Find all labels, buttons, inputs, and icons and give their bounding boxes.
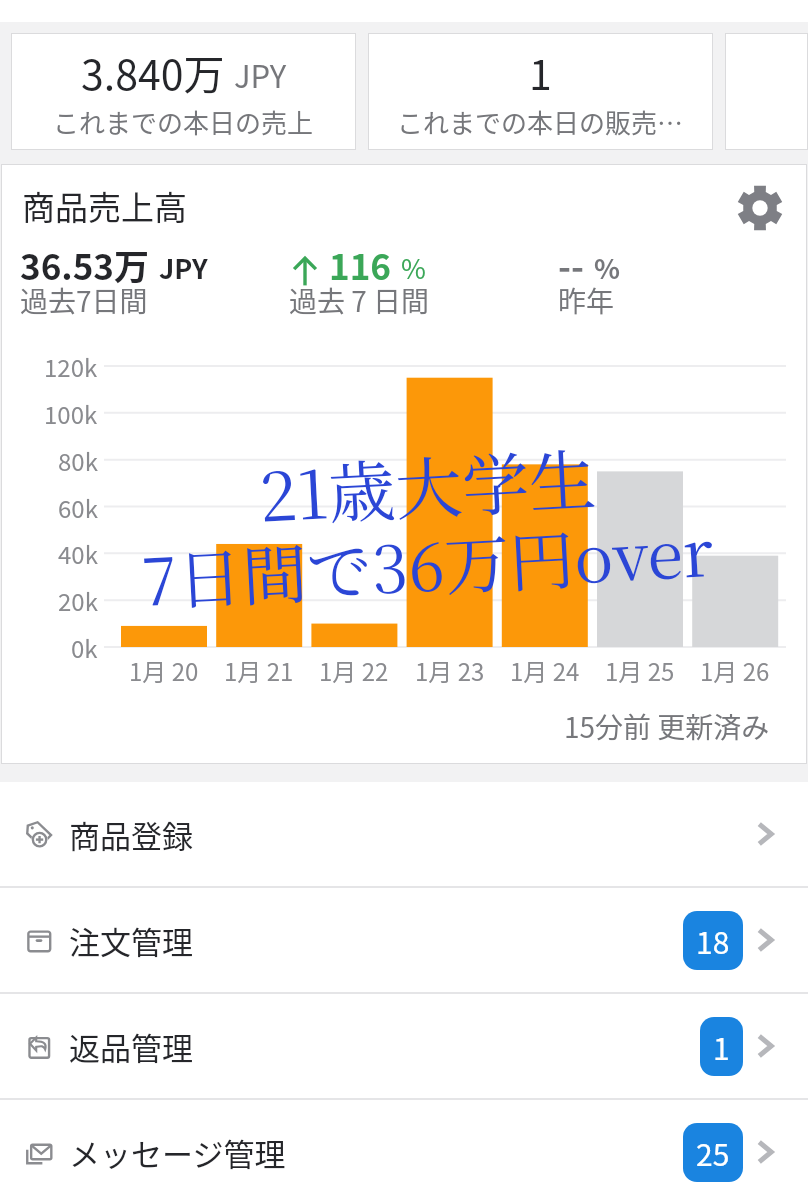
- staticText: 15分前 更新済み: [564, 706, 770, 747]
- staticText: 注文管理: [69, 918, 193, 963]
- staticText: 40k: [58, 536, 98, 571]
- button[interactable]: メッセージ管理: [0, 1100, 808, 1200]
- staticText: 1月 23: [415, 653, 485, 688]
- button[interactable]: 商品登録: [0, 782, 808, 886]
- staticText: 返品管理: [69, 1024, 193, 1069]
- staticText: 1: [529, 42, 552, 101]
- staticText: JPY: [159, 248, 208, 287]
- staticText: 1月 26: [700, 653, 770, 688]
- staticText: 過去7日間: [20, 280, 148, 321]
- staticText: 20k: [58, 583, 98, 618]
- staticText: JPY: [234, 52, 287, 97]
- staticText: --: [558, 239, 584, 290]
- staticText: これまでの本日の売上: [53, 103, 314, 141]
- staticText: 21歳大学生: [257, 427, 598, 541]
- staticText: 80k: [58, 443, 98, 478]
- staticText: %: [594, 248, 621, 287]
- staticText: 100k: [44, 396, 98, 431]
- staticText: 商品売上高: [22, 182, 187, 230]
- staticText: 3.840万: [81, 42, 225, 101]
- staticText: 60k: [58, 490, 98, 525]
- staticText: 1月 22: [319, 653, 389, 688]
- button[interactable]: 1: [368, 33, 713, 150]
- button[interactable]: Settings: [729, 177, 791, 239]
- staticText: 過去 7 日間: [289, 280, 430, 321]
- staticText: 120k: [44, 349, 98, 384]
- staticText: 1: [713, 1025, 730, 1068]
- staticText: 7日間で36万円over: [139, 501, 715, 624]
- staticText: 1月 21: [224, 653, 294, 688]
- staticText: 18: [696, 919, 730, 962]
- staticText: 25: [696, 1131, 730, 1174]
- staticText: 0k: [71, 630, 98, 665]
- staticText: 1月 24: [510, 653, 580, 688]
- button[interactable]: 返品管理: [0, 994, 808, 1098]
- staticText: 1月 25: [605, 653, 675, 688]
- staticText: 商品登録: [69, 812, 193, 857]
- button[interactable]: [725, 33, 808, 150]
- staticText: これまでの本日の販売…: [397, 103, 684, 141]
- staticText: 1月 20: [129, 653, 199, 688]
- staticText: %: [401, 248, 426, 287]
- staticText: メッセージ管理: [69, 1130, 286, 1175]
- staticText: 昨年: [558, 280, 615, 321]
- staticText: 116: [329, 239, 391, 290]
- button[interactable]: 注文管理: [0, 888, 808, 992]
- button[interactable]: 3.840万: [11, 33, 356, 150]
- staticText: 36.53万: [20, 239, 149, 290]
